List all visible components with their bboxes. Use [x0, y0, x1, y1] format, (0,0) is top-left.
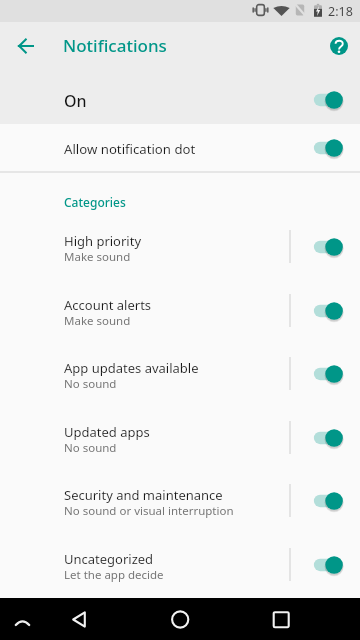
staticText: Notifications — [63, 34, 167, 57]
staticText: Make sound — [64, 249, 131, 265]
button[interactable]: Hide keyboard — [2, 598, 44, 640]
button[interactable]: Security and maintenance — [0, 482, 360, 546]
staticText: On — [64, 90, 87, 112]
staticText: Security and maintenance — [64, 486, 223, 504]
staticText: App updates available — [64, 359, 199, 377]
button[interactable]: Allow notification dot — [0, 126, 360, 171]
staticText: Uncategorized — [64, 550, 154, 568]
staticText: No sound — [64, 440, 117, 456]
button[interactable]: Home — [159, 598, 201, 640]
button[interactable]: Account alerts — [0, 292, 360, 356]
button[interactable]: Toggle on — [312, 138, 344, 159]
staticText: Categories — [64, 194, 126, 210]
staticText: No sound or visual interruption — [64, 503, 234, 519]
button[interactable]: Toggle on — [312, 237, 344, 258]
button[interactable]: Help — [322, 29, 356, 63]
staticText: Account alerts — [64, 296, 152, 314]
staticText: No sound — [64, 376, 117, 392]
button[interactable]: Toggle on — [312, 364, 344, 385]
button[interactable]: Back — [58, 598, 100, 640]
staticText: Let the app decide — [64, 567, 164, 583]
button[interactable]: Uncategorized — [0, 546, 360, 610]
staticText: 2:18 — [328, 3, 353, 20]
button[interactable]: Toggle on — [312, 491, 344, 512]
staticText: Updated apps — [64, 423, 150, 441]
button[interactable]: Toggle on — [312, 428, 344, 449]
staticText: Make sound — [64, 313, 131, 329]
button[interactable]: Toggle on — [312, 555, 344, 576]
button[interactable]: Navigate up — [5, 26, 45, 66]
button[interactable]: On — [0, 78, 360, 123]
staticText: Allow notification dot — [64, 140, 196, 158]
button[interactable]: Toggle on — [312, 301, 344, 322]
button[interactable]: App updates available — [0, 355, 360, 419]
button[interactable]: Updated apps — [0, 419, 360, 483]
staticText: High priority — [64, 232, 142, 250]
button[interactable]: Recent apps — [260, 598, 302, 640]
button[interactable]: Toggle on — [312, 90, 344, 111]
button[interactable]: High priority — [0, 228, 360, 292]
